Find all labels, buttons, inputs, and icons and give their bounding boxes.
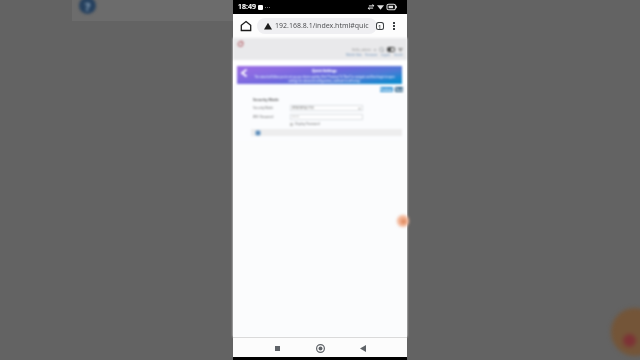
button[interactable]: Back <box>355 340 371 356</box>
other: Back <box>242 70 246 76</box>
button[interactable]: Tabs <box>372 18 388 34</box>
staticText: Search <box>394 53 403 57</box>
staticText: Previous <box>380 88 393 92</box>
staticText: WiFi Password <box>253 115 274 119</box>
button[interactable]: Display Password <box>290 122 320 126</box>
staticText: Mobile Data <box>346 53 362 57</box>
staticText: WPA/WPA2-PSK <box>292 106 314 110</box>
staticText: Firmware <box>365 53 378 57</box>
staticText: Display Password <box>295 122 320 126</box>
staticText: Security Mode <box>253 106 274 110</box>
staticText: ? <box>85 0 91 14</box>
staticText: Hello, admin <box>352 48 371 52</box>
staticText: 18:49 <box>238 2 256 12</box>
button[interactable]: Home <box>312 340 328 356</box>
staticText: 192.168.8.1/index.html#quic <box>275 21 369 31</box>
staticText: 1 <box>378 23 382 29</box>
button[interactable]: 192.168.8.1/index.html#quic <box>257 18 377 34</box>
button[interactable]: More options <box>386 18 402 34</box>
staticText: Logout <box>381 53 391 57</box>
staticText: Security Mode <box>253 97 279 102</box>
staticText: Quick Settings <box>312 68 337 73</box>
button[interactable]: Previous <box>380 87 393 92</box>
button[interactable]: Recents <box>269 340 285 356</box>
button[interactable]: Back <box>237 66 402 84</box>
button[interactable]: Help <box>79 0 96 14</box>
staticText: •••••• <box>292 115 299 119</box>
button[interactable]: Home <box>238 18 254 34</box>
staticText: The wizard will allow you to set up your… <box>253 75 396 83</box>
staticText: Next <box>396 88 403 92</box>
button[interactable]: Next <box>395 87 403 92</box>
